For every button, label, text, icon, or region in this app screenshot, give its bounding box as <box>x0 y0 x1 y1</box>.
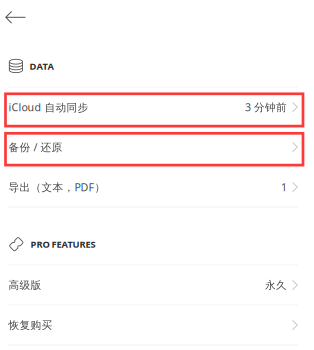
button[interactable]: 高级版 <box>0 266 314 305</box>
staticText: DATA <box>29 60 53 72</box>
button[interactable]: 恢复购买 <box>0 306 314 345</box>
staticText: 3 分钟前 <box>245 100 287 114</box>
staticText: 导出（文本，PDF） <box>8 180 105 194</box>
staticText: 1 <box>281 180 287 194</box>
staticText: iCloud 自动同步 <box>8 100 88 114</box>
staticText: PRO FEATURES <box>30 238 95 250</box>
staticText: 备份 / 还原 <box>8 140 62 154</box>
staticText: 永久 <box>265 278 287 292</box>
button[interactable]: 导出（文本，PDF） <box>0 168 314 207</box>
button[interactable]: 备份 / 还原 <box>0 128 314 167</box>
button[interactable]: Back <box>0 0 314 36</box>
staticText: 高级版 <box>8 278 41 292</box>
button[interactable]: iCloud 自动同步 <box>0 88 314 127</box>
staticText: 恢复购买 <box>8 318 52 332</box>
